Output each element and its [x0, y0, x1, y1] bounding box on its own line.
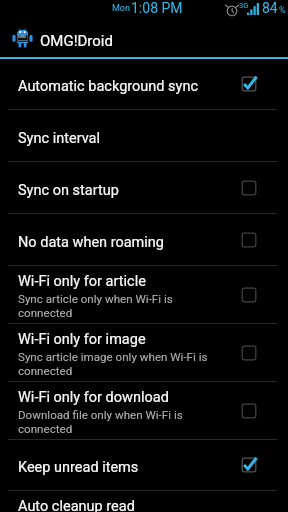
staticText: Sync on startup [18, 182, 119, 199]
staticText: 3G [239, 1, 249, 10]
staticText: OMG [18, 35, 27, 39]
staticText: Sync article only when Wi-Fi is connecte… [18, 292, 218, 320]
staticText: No data when roaming [18, 234, 164, 251]
button[interactable]: Sync on startup [0, 162, 288, 213]
staticText: OMG!Droid [40, 32, 113, 50]
staticText: Auto cleanup read [18, 498, 135, 512]
staticText: Automatic background sync [18, 78, 199, 95]
staticText: Mon [112, 3, 130, 14]
staticText: 1:08 PM [131, 0, 183, 16]
staticText: 84 [262, 0, 278, 16]
button[interactable]: App icon [0, 18, 288, 57]
staticText: Download file only when Wi-Fi is connect… [18, 408, 218, 436]
button[interactable]: Auto cleanup read [0, 491, 288, 512]
button[interactable]: Sync interval [0, 110, 288, 161]
staticText: % [279, 5, 286, 16]
staticText: Wi-Fi only for image [18, 331, 146, 348]
button[interactable]: Keep unread items [0, 440, 288, 490]
staticText: Wi-Fi only for article [18, 273, 146, 290]
staticText: Sync article image only when Wi-Fi is co… [18, 350, 218, 378]
button[interactable]: Wi-Fi only for download [0, 382, 288, 439]
other: Alarm set [226, 4, 238, 16]
button[interactable]: Automatic background sync [0, 59, 288, 109]
button[interactable]: No data when roaming [0, 214, 288, 265]
staticText: Sync interval [18, 130, 101, 147]
other: App icon [12, 28, 33, 48]
button[interactable]: Wi-Fi only for article [0, 266, 288, 323]
staticText: Keep unread items [18, 459, 139, 476]
staticText: Wi-Fi only for download [18, 389, 169, 406]
button[interactable]: Wi-Fi only for image [0, 324, 288, 381]
